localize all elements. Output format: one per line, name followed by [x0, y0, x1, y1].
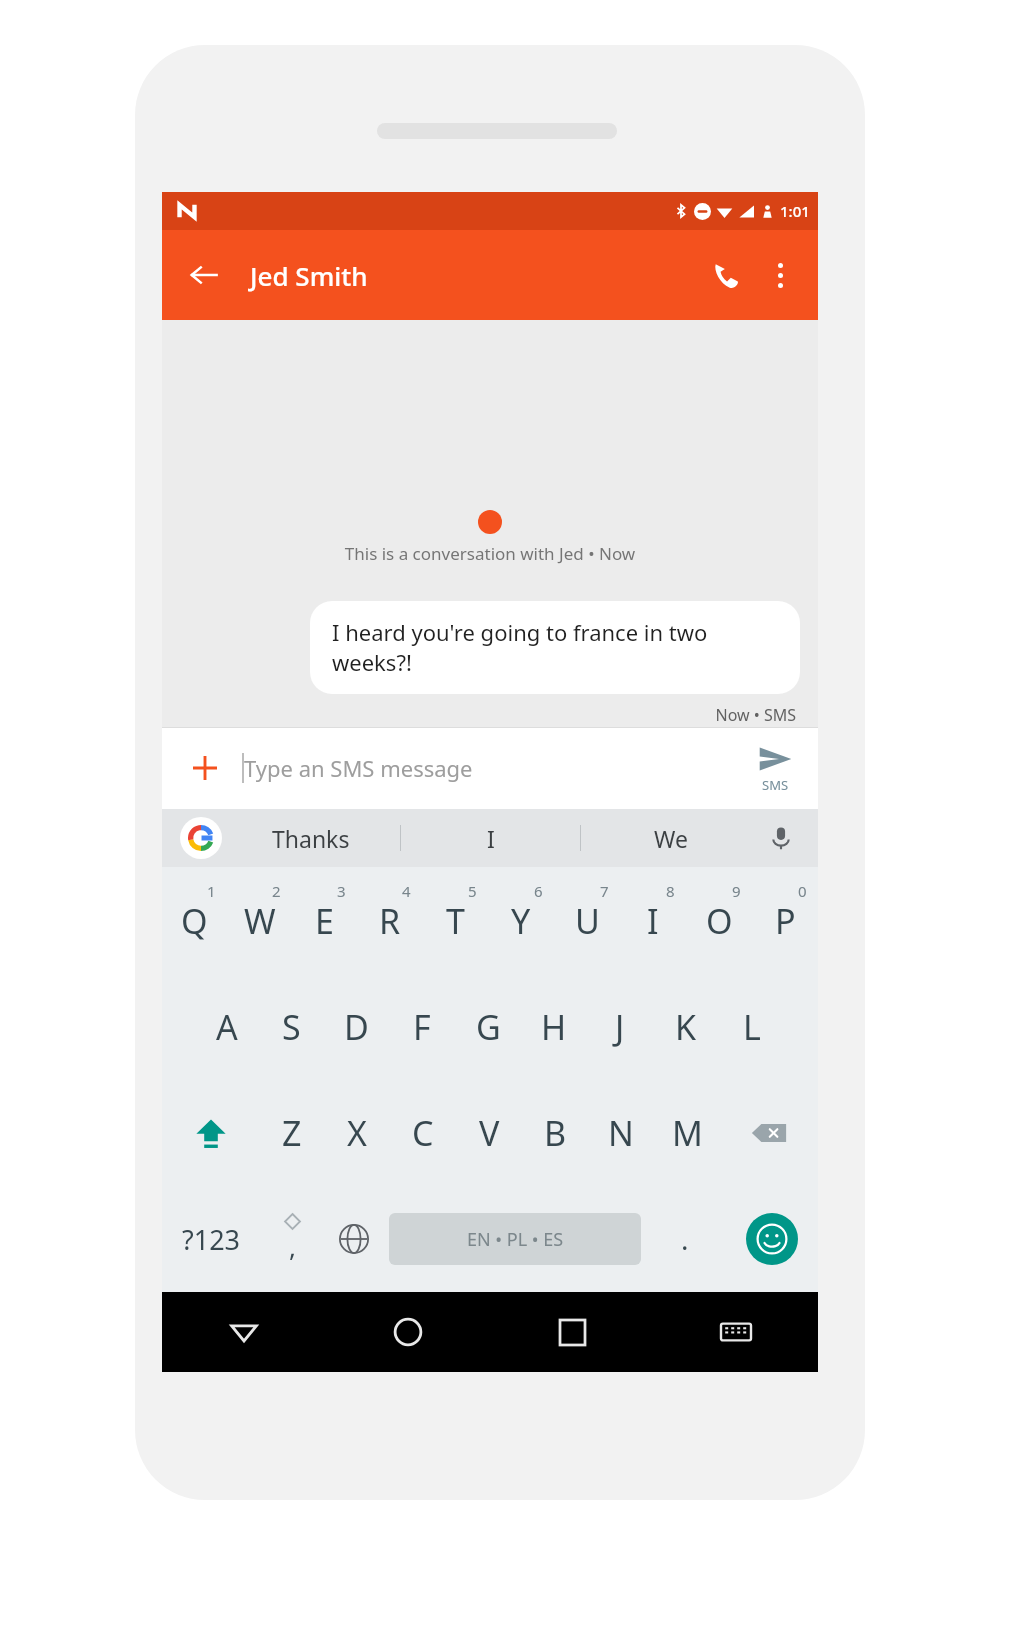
button[interactable]: G: [455, 974, 521, 1080]
staticText: R: [379, 898, 401, 944]
staticText: E: [315, 898, 334, 944]
button[interactable]: Shift: [162, 1080, 259, 1186]
staticText: ?123: [182, 1221, 241, 1258]
staticText: 1:01: [780, 201, 810, 221]
staticText: S: [282, 1004, 301, 1050]
button[interactable]: K: [653, 974, 719, 1080]
button[interactable]: Add attachment: [184, 747, 226, 789]
staticText: Type an SMS message: [244, 753, 473, 783]
staticText: H: [541, 1004, 567, 1050]
staticText: EN • PL • ES: [467, 1227, 564, 1252]
button[interactable]: I: [620, 867, 686, 974]
staticText: I: [647, 898, 659, 944]
staticText: W: [244, 898, 276, 944]
staticText: 9: [732, 881, 741, 901]
staticText: 0: [798, 881, 807, 901]
staticText: A: [216, 1004, 238, 1050]
staticText: 4: [402, 881, 411, 901]
staticText: 2: [272, 881, 281, 901]
button[interactable]: O: [686, 867, 752, 974]
button[interactable]: E: [292, 867, 357, 974]
button[interactable]: H: [521, 974, 587, 1080]
staticText: Y: [511, 898, 531, 944]
staticText: X: [347, 1110, 367, 1156]
staticText: J: [615, 1004, 625, 1050]
staticText: M: [672, 1110, 703, 1156]
button[interactable]: Back: [162, 1292, 326, 1372]
button[interactable]: F: [389, 974, 455, 1080]
staticText: I heard you're going to france in two we…: [332, 617, 778, 678]
button[interactable]: Thanks: [222, 809, 400, 867]
button[interactable]: Z: [259, 1080, 324, 1186]
staticText: V: [479, 1110, 500, 1156]
staticText: We: [654, 823, 688, 854]
button[interactable]: Y: [488, 867, 554, 974]
staticText: Jed Smith: [250, 258, 698, 293]
button[interactable]: Emoji: [725, 1186, 818, 1292]
button[interactable]: EN • PL • ES: [389, 1213, 641, 1265]
button[interactable]: C: [390, 1080, 456, 1186]
button[interactable]: M: [654, 1080, 720, 1186]
button[interactable]: S: [259, 974, 324, 1080]
staticText: N: [608, 1110, 634, 1156]
button[interactable]: I: [401, 809, 580, 867]
button[interactable]: .: [645, 1186, 725, 1292]
staticText: C: [412, 1110, 434, 1156]
button[interactable]: We: [581, 809, 760, 867]
staticText: Now • SMS: [162, 704, 796, 726]
staticText: SMS: [762, 776, 789, 794]
staticText: 8: [666, 881, 675, 901]
button[interactable]: A: [194, 974, 259, 1080]
button[interactable]: Home: [326, 1292, 490, 1372]
button[interactable]: Voice input: [760, 817, 802, 859]
staticText: G: [476, 1004, 501, 1050]
staticText: I: [487, 823, 495, 854]
staticText: B: [544, 1110, 567, 1156]
button[interactable]: V: [456, 1080, 522, 1186]
staticText: Q: [181, 898, 208, 944]
button[interactable]: L: [719, 974, 785, 1080]
staticText: D: [344, 1004, 369, 1050]
staticText: T: [446, 898, 465, 944]
button[interactable]: X: [324, 1080, 390, 1186]
button[interactable]: W: [227, 867, 292, 974]
button[interactable]: Comma: [261, 1186, 323, 1292]
button[interactable]: J: [587, 974, 653, 1080]
button[interactable]: Recent apps: [490, 1292, 654, 1372]
staticText: U: [575, 898, 600, 944]
button[interactable]: U: [554, 867, 620, 974]
staticText: P: [775, 898, 796, 944]
button[interactable]: N: [588, 1080, 654, 1186]
staticText: 1: [207, 881, 216, 901]
button[interactable]: Change language: [323, 1186, 385, 1292]
button[interactable]: I heard you're going to france in two we…: [310, 601, 800, 694]
staticText: O: [706, 898, 733, 944]
button[interactable]: Google: [180, 817, 222, 859]
button[interactable]: Call: [698, 247, 754, 303]
staticText: Z: [282, 1110, 302, 1156]
staticText: 5: [468, 881, 477, 901]
staticText: K: [675, 1004, 697, 1050]
button[interactable]: R: [357, 867, 422, 974]
staticText: ,: [289, 1229, 296, 1264]
button[interactable]: Back: [178, 249, 230, 301]
staticText: 7: [600, 881, 609, 901]
button[interactable]: Send SMS: [754, 742, 796, 794]
button[interactable]: T: [422, 867, 488, 974]
button[interactable]: More options: [754, 249, 806, 301]
button[interactable]: P: [752, 867, 818, 974]
staticText: 6: [534, 881, 543, 901]
button[interactable]: Hide keyboard: [654, 1292, 818, 1372]
staticText: .: [681, 1220, 689, 1258]
staticText: L: [743, 1004, 761, 1050]
button[interactable]: Q: [162, 867, 227, 974]
button[interactable]: Backspace: [720, 1080, 818, 1186]
staticText: This is a conversation with Jed • Now: [162, 542, 818, 565]
button[interactable]: ?123: [162, 1186, 261, 1292]
staticText: F: [413, 1004, 431, 1050]
staticText: 3: [337, 881, 346, 901]
button[interactable]: B: [522, 1080, 588, 1186]
button[interactable]: D: [324, 974, 389, 1080]
staticText: Thanks: [272, 823, 350, 854]
